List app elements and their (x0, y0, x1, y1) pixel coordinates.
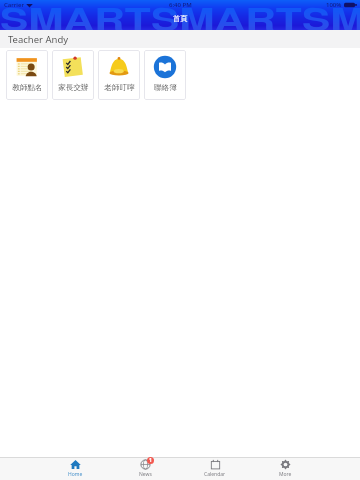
staticText: 100% (326, 1, 342, 9)
staticText: 老師叮嚀 (104, 83, 135, 93)
button[interactable]: 老師叮嚀 (98, 50, 140, 100)
button[interactable]: 聯絡簿 (144, 50, 186, 100)
staticText: SMARTSMARTSM (0, 0, 360, 41)
staticText: Home (68, 471, 83, 478)
staticText: More (279, 471, 292, 478)
button[interactable]: More (264, 459, 306, 478)
staticText: 家長交辦 (58, 83, 89, 93)
button[interactable]: 家長交辦 (52, 50, 94, 100)
button[interactable]: Home (54, 459, 96, 478)
staticText: 教師點名 (12, 83, 43, 93)
button[interactable]: News (124, 459, 166, 478)
staticText: News (139, 471, 152, 478)
staticText: 首頁 (173, 14, 188, 23)
staticText: Teacher Andy (8, 33, 69, 46)
button[interactable]: Calendar (194, 459, 236, 478)
staticText: 聯絡簿 (154, 83, 177, 93)
staticText: Calendar (204, 471, 226, 478)
button[interactable]: 教師點名 (6, 50, 48, 100)
staticText: Carrier (4, 1, 24, 9)
staticText: 1 (149, 457, 152, 464)
staticText: 6:40 PM (169, 1, 192, 9)
